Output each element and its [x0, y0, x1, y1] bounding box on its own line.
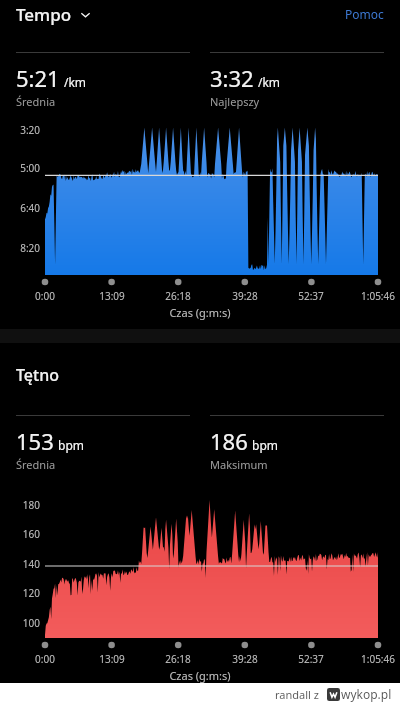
staticText: 26:18: [148, 652, 208, 666]
staticText: 39:28: [215, 289, 275, 303]
staticText: 6:40: [4, 201, 40, 215]
staticText: bpm: [252, 437, 278, 453]
staticText: 120: [4, 586, 40, 600]
staticText: 8:20: [4, 241, 40, 255]
staticText: Tempo: [16, 3, 72, 26]
staticText: 1:05:46: [348, 289, 400, 303]
staticText: 13:09: [82, 289, 142, 303]
staticText: randall z: [275, 687, 319, 702]
staticText: 153: [16, 426, 54, 456]
staticText: wykop.pl: [341, 686, 392, 702]
staticText: /km: [258, 74, 281, 90]
staticText: Średnia: [16, 94, 56, 109]
staticText: 13:09: [82, 652, 142, 666]
staticText: 3:20: [4, 123, 40, 137]
staticText: 186: [210, 426, 248, 456]
staticText: 0:00: [15, 652, 75, 666]
staticText: 140: [4, 557, 40, 571]
staticText: bpm: [58, 437, 84, 453]
staticText: 0:00: [15, 289, 75, 303]
button[interactable]: 5:21: [16, 52, 190, 109]
button[interactable]: 186: [210, 415, 384, 472]
staticText: 39:28: [215, 652, 275, 666]
staticText: Najlepszy: [210, 94, 260, 109]
staticText: Tętno: [16, 364, 59, 386]
button[interactable]: Pomoc: [345, 6, 384, 22]
staticText: 1:05:46: [348, 652, 400, 666]
staticText: 100: [4, 616, 40, 630]
staticText: Czas (g:m:s): [0, 305, 400, 320]
staticText: 180: [4, 498, 40, 512]
staticText: Średnia: [16, 457, 56, 472]
staticText: 3:32: [210, 63, 254, 93]
staticText: 26:18: [148, 289, 208, 303]
staticText: 5:00: [4, 161, 40, 175]
button[interactable]: 153: [16, 415, 190, 472]
button[interactable]: Tempo, change metric: [16, 3, 92, 26]
staticText: Czas (g:m:s): [0, 668, 400, 683]
staticText: 52:37: [281, 652, 341, 666]
staticText: 52:37: [281, 289, 341, 303]
staticText: /km: [64, 74, 87, 90]
staticText: Pomoc: [345, 6, 384, 22]
button[interactable]: 3:32: [210, 52, 384, 109]
staticText: 160: [4, 527, 40, 541]
staticText: 5:21: [16, 63, 60, 93]
staticText: Maksimum: [210, 457, 268, 472]
